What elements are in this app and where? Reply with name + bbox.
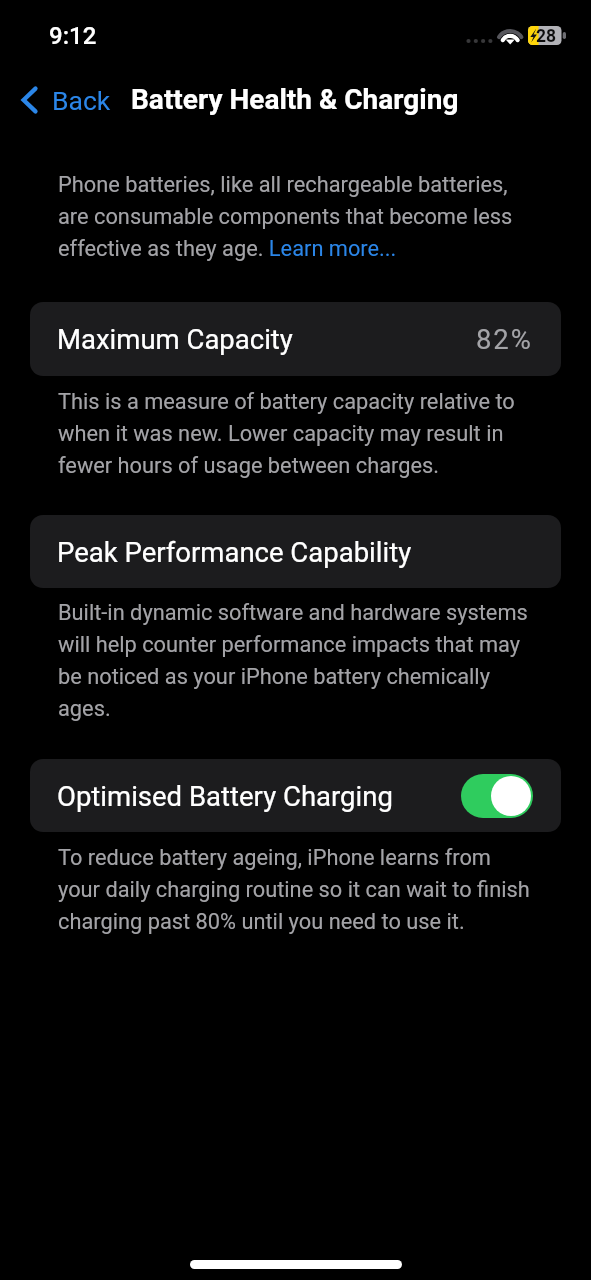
button[interactable]: Maximum Capacity — [30, 302, 561, 376]
staticText: Optimised Battery Charging — [57, 780, 393, 812]
staticText: This is a measure of battery capacity re… — [58, 389, 530, 478]
button[interactable]: Optimised Battery Charging toggle, on — [461, 774, 533, 818]
staticText: 82% — [476, 323, 533, 355]
staticText: Phone batteries, like all rechargeable b… — [58, 172, 530, 261]
staticText: Maximum Capacity — [57, 323, 293, 355]
button[interactable]: Learn more... — [268, 234, 397, 262]
button[interactable]: Optimised Battery Charging — [30, 759, 561, 832]
staticText: Back — [52, 85, 111, 116]
staticText: Built-in dynamic software and hardware s… — [58, 600, 530, 721]
staticText: 9:12 — [49, 22, 97, 50]
staticText: To reduce battery ageing, iPhone learns … — [58, 845, 530, 934]
staticText: Peak Performance Capability — [57, 536, 412, 568]
staticText: 28 — [536, 26, 557, 45]
button[interactable]: Peak Performance Capability — [30, 515, 561, 588]
staticText: Battery Health & Charging — [131, 83, 459, 116]
button[interactable]: Back — [12, 80, 121, 120]
